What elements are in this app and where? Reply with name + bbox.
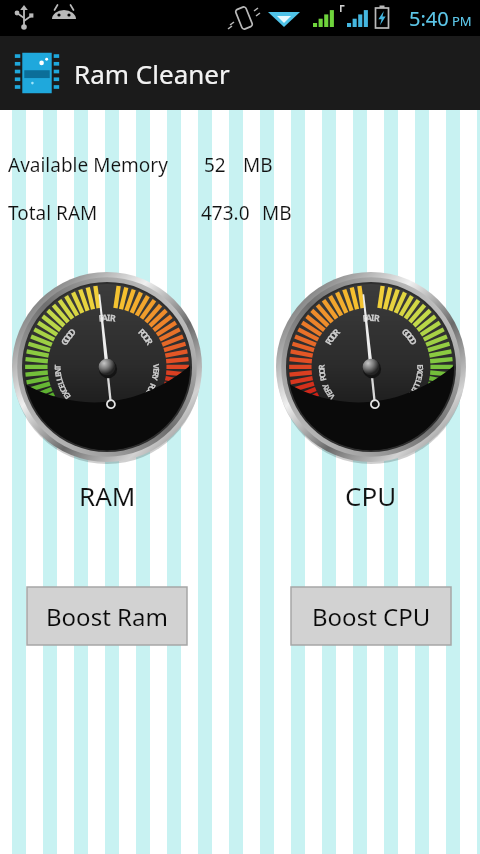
staticText: Ram Cleaner	[74, 56, 230, 91]
staticText: 52	[204, 152, 226, 178]
staticText: 5:40	[409, 5, 449, 32]
other: Ram Cleaner app icon	[14, 50, 60, 96]
staticText: Available Memory	[8, 152, 168, 178]
button[interactable]: Boost Ram	[27, 587, 187, 645]
button[interactable]: Boost CPU	[291, 587, 451, 645]
staticText: 473.0	[201, 200, 250, 226]
staticText: Total RAM	[8, 200, 98, 226]
staticText: Boost CPU	[312, 600, 431, 633]
staticText: MB	[262, 200, 292, 226]
staticText: RAM	[79, 478, 136, 513]
staticText: MB	[243, 152, 273, 178]
staticText: CPU	[345, 478, 397, 513]
staticText: PM	[452, 12, 472, 30]
staticText: Boost Ram	[46, 600, 168, 633]
